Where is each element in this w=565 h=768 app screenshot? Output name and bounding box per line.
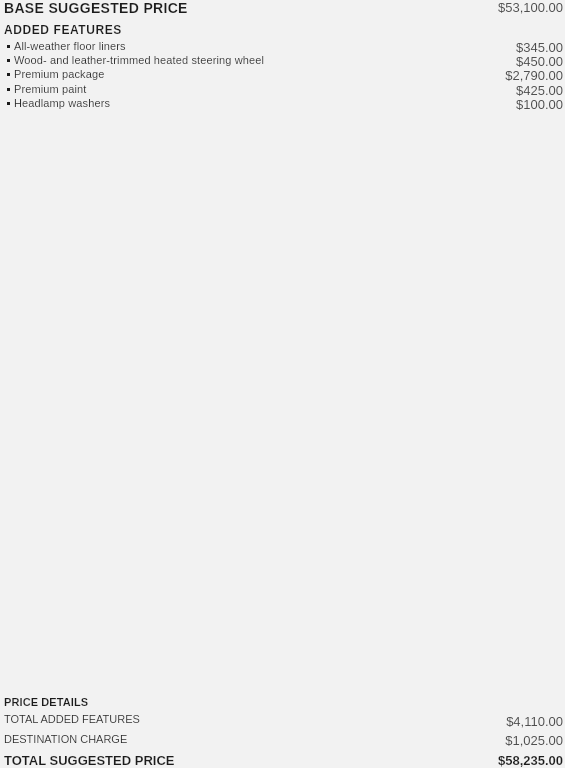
button[interactable]: Premium package bbox=[0, 68, 565, 82]
staticText: All-weather floor liners bbox=[14, 40, 126, 52]
staticText: $2,790.00 bbox=[0, 68, 563, 82]
staticText: $1,025.00 bbox=[0, 733, 563, 748]
staticText: $450.00 bbox=[0, 54, 563, 68]
button[interactable]: Base suggested price $53,100.00 bbox=[0, 0, 565, 21]
staticText: ADDED FEATURES bbox=[4, 23, 122, 36]
staticText: TOTAL ADDED FEATURES bbox=[4, 713, 140, 725]
button[interactable]: TOTAL ADDED FEATURES bbox=[0, 713, 565, 729]
staticText: DESTINATION CHARGE bbox=[4, 733, 128, 745]
staticText: $425.00 bbox=[0, 83, 563, 97]
staticText: $4,110.00 bbox=[0, 714, 563, 729]
staticText: PRICE DETAILS bbox=[4, 696, 89, 708]
button[interactable]: DESTINATION CHARGE bbox=[0, 733, 565, 749]
staticText: $53,100.00 bbox=[0, 0, 563, 15]
staticText: $58,235.00 bbox=[0, 753, 563, 768]
staticText: Headlamp washers bbox=[14, 97, 111, 109]
staticText: Premium paint bbox=[14, 83, 87, 95]
staticText: $100.00 bbox=[0, 97, 563, 111]
staticText: TOTAL SUGGESTED PRICE bbox=[4, 753, 175, 768]
button[interactable]: TOTAL SUGGESTED PRICE bbox=[0, 753, 565, 768]
staticText: Premium package bbox=[14, 68, 105, 80]
staticText: BASE SUGGESTED PRICE bbox=[4, 0, 188, 16]
staticText: $345.00 bbox=[0, 40, 563, 54]
button[interactable]: All-weather floor liners bbox=[0, 40, 565, 54]
staticText: Wood- and leather-trimmed heated steerin… bbox=[14, 54, 265, 66]
button[interactable]: Premium paint bbox=[0, 83, 565, 97]
button[interactable]: Wood- and leather-trimmed heated steerin… bbox=[0, 54, 565, 68]
button[interactable]: Headlamp washers bbox=[0, 97, 565, 111]
